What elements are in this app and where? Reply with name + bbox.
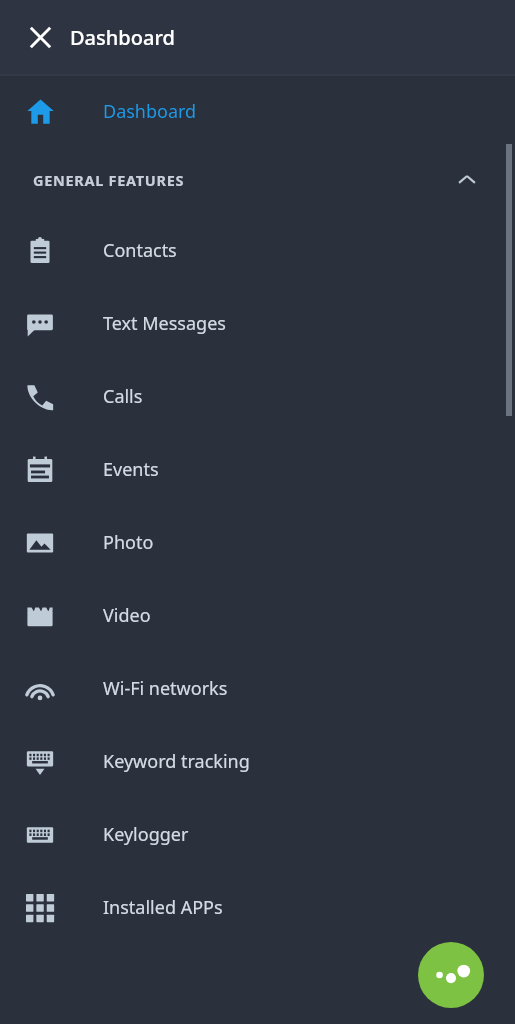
button[interactable]: Keyword tracking [0,725,515,798]
button[interactable]: Text Messages [0,287,515,360]
staticText: Contacts [103,238,177,263]
staticText: Photo [103,530,154,555]
staticText: Keylogger [103,822,189,847]
button[interactable]: Chat support [418,942,484,1008]
button[interactable]: Events [0,433,515,506]
staticText: Dashboard [70,24,175,51]
button[interactable]: Close [18,15,62,59]
staticText: Dashboard [103,99,197,124]
button[interactable]: Wi-Fi networks [0,652,515,725]
button[interactable]: Keylogger [0,798,515,871]
button[interactable]: Dashboard [0,76,515,146]
staticText: Video [103,603,151,628]
button[interactable]: Contacts [0,214,515,287]
staticText: Wi-Fi networks [103,676,228,701]
button[interactable]: GENERAL FEATURES [0,146,515,214]
staticText: Keyword tracking [103,749,250,774]
staticText: Installed APPs [103,895,223,920]
button[interactable]: Installed APPs [0,871,515,944]
staticText: Text Messages [103,311,226,336]
staticText: Events [103,457,159,482]
staticText: Calls [103,384,143,409]
staticText: GENERAL FEATURES [33,170,185,190]
button[interactable]: Video [0,579,515,652]
button[interactable]: Photo [0,506,515,579]
button[interactable]: Calls [0,360,515,433]
